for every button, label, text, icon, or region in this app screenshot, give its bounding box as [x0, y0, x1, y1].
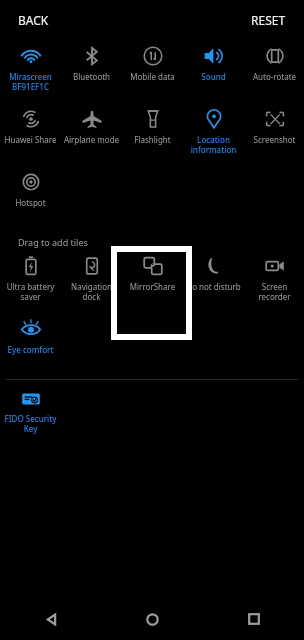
staticText: Screen recorder [245, 281, 304, 302]
button[interactable]: Sound [183, 44, 244, 96]
staticText: Hotspot [1, 197, 60, 208]
other: Airplane mode [81, 108, 103, 130]
staticText: Airplane mode [62, 134, 121, 145]
button[interactable]: Mirascreen BF91EF1C [0, 44, 61, 96]
staticText: Mirascreen BF91EF1C [1, 71, 60, 92]
staticText: Eye comfort [1, 344, 60, 355]
other: Ultra battery saver [20, 255, 42, 277]
other: Auto-rotate [264, 45, 286, 67]
other: Screen recorder [264, 255, 286, 277]
staticText: BACK [18, 12, 49, 28]
staticText: Navigation dock [62, 281, 121, 302]
button[interactable]: Flashlight [122, 107, 183, 159]
button[interactable]: Do not disturb [183, 254, 244, 306]
staticText: Flashlight [123, 134, 182, 145]
staticText: Drag to add tiles [18, 236, 88, 248]
button[interactable]: RESET [243, 6, 294, 34]
button[interactable]: Eye comfort [0, 317, 61, 369]
button[interactable]: Location information [183, 107, 244, 159]
button[interactable]: Mobile data [122, 44, 183, 96]
other: Bluetooth [81, 45, 103, 67]
button[interactable]: Ultra battery saver [0, 254, 61, 306]
staticText: Auto-rotate [245, 71, 304, 82]
other: Location information [203, 108, 225, 130]
button[interactable]: Auto-rotate [244, 44, 304, 96]
other: FIDO Security Key [21, 389, 41, 409]
other: Eye comfort [20, 318, 42, 340]
other: Sound [203, 45, 225, 67]
other: Screenshot [264, 108, 286, 130]
button[interactable]: Airplane mode [61, 107, 122, 159]
button[interactable]: Bluetooth [61, 44, 122, 96]
button[interactable]: Screenshot [244, 107, 304, 159]
button[interactable]: Recent apps [203, 598, 304, 640]
staticText: Screenshot [245, 134, 304, 145]
staticText: Mobile data [123, 71, 182, 82]
other: Hotspot [20, 171, 42, 193]
other: Navigation dock [81, 255, 103, 277]
button[interactable]: BACK [10, 6, 57, 34]
other: Mobile data [142, 45, 164, 67]
button[interactable]: FIDO Security Key [0, 388, 61, 440]
button[interactable]: Back [0, 598, 102, 640]
other: Huawei Share [20, 108, 42, 130]
staticText: RESET [251, 12, 286, 28]
button[interactable]: Huawei Share [0, 107, 61, 159]
other: Do not disturb [203, 255, 225, 277]
button[interactable]: Screen recorder [244, 254, 304, 306]
staticText: Bluetooth [62, 71, 121, 82]
button[interactable] [114, 249, 189, 337]
staticText: Ultra battery saver [1, 281, 60, 302]
other: MirrorShare [142, 255, 164, 277]
button[interactable]: MirrorShare [122, 254, 183, 306]
staticText: Do not disturb [184, 281, 243, 292]
staticText: FIDO Security Key [1, 413, 60, 434]
staticText: Huawei Share [1, 134, 60, 145]
other: Flashlight [142, 108, 164, 130]
button[interactable]: Navigation dock [61, 254, 122, 306]
other: Mirascreen BF91EF1C [20, 45, 42, 67]
button[interactable]: Hotspot [0, 170, 61, 222]
staticText: Location information [184, 134, 243, 155]
staticText: Sound [184, 71, 243, 82]
staticText: MirrorShare [123, 281, 182, 292]
button[interactable]: Home [102, 598, 203, 640]
